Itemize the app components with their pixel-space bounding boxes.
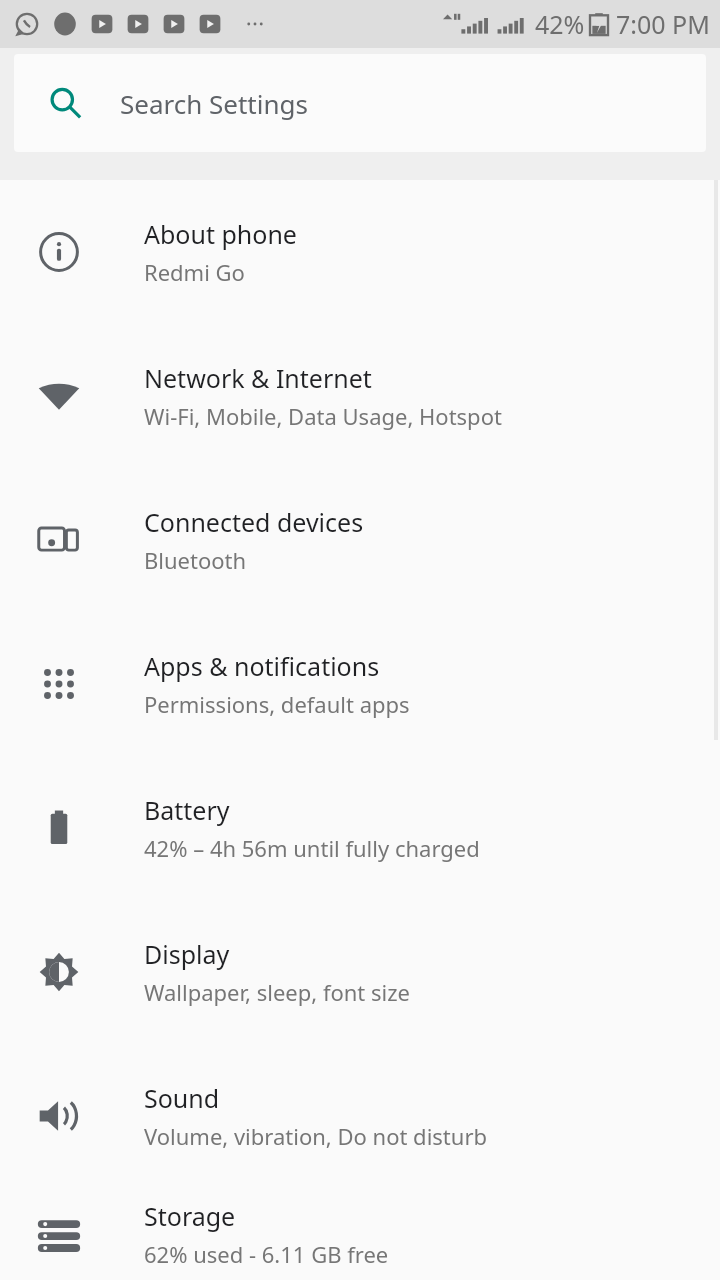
staticText: Wallpaper, sleep, font size [144,977,410,1007]
staticText: Search Settings [120,86,308,121]
staticText: Wi-Fi, Mobile, Data Usage, Hotspot [144,401,502,431]
staticText: Apps & notifications [144,649,380,683]
staticText: Redmi Go [144,257,245,287]
staticText: 42% – 4h 56m until fully charged [144,833,480,863]
staticText: 42% [535,7,585,41]
button[interactable]: Connected devices [0,468,720,612]
staticText: Battery [144,793,230,827]
staticText: Bluetooth [144,545,247,575]
button[interactable]: About phone [0,180,720,324]
button[interactable]: Display [0,900,720,1044]
button[interactable]: Battery [0,756,720,900]
staticText: 62% used - 6.11 GB free [144,1239,389,1269]
staticText: Network & Internet [144,361,372,395]
staticText: 7:00 PM [616,7,710,41]
staticText: Sound [144,1081,220,1115]
button[interactable]: Apps & notifications [0,612,720,756]
staticText: Volume, vibration, Do not disturb [144,1121,488,1151]
staticText: Storage [144,1199,236,1233]
staticText: Display [144,937,230,971]
staticText: Permissions, default apps [144,689,410,719]
staticText: About phone [144,217,297,251]
staticText: Connected devices [144,505,364,539]
button[interactable]: Storage [0,1188,720,1280]
button[interactable]: Sound [0,1044,720,1188]
other: Search [48,86,82,120]
button[interactable]: Network & Internet [0,324,720,468]
button[interactable]: Search [14,54,706,152]
